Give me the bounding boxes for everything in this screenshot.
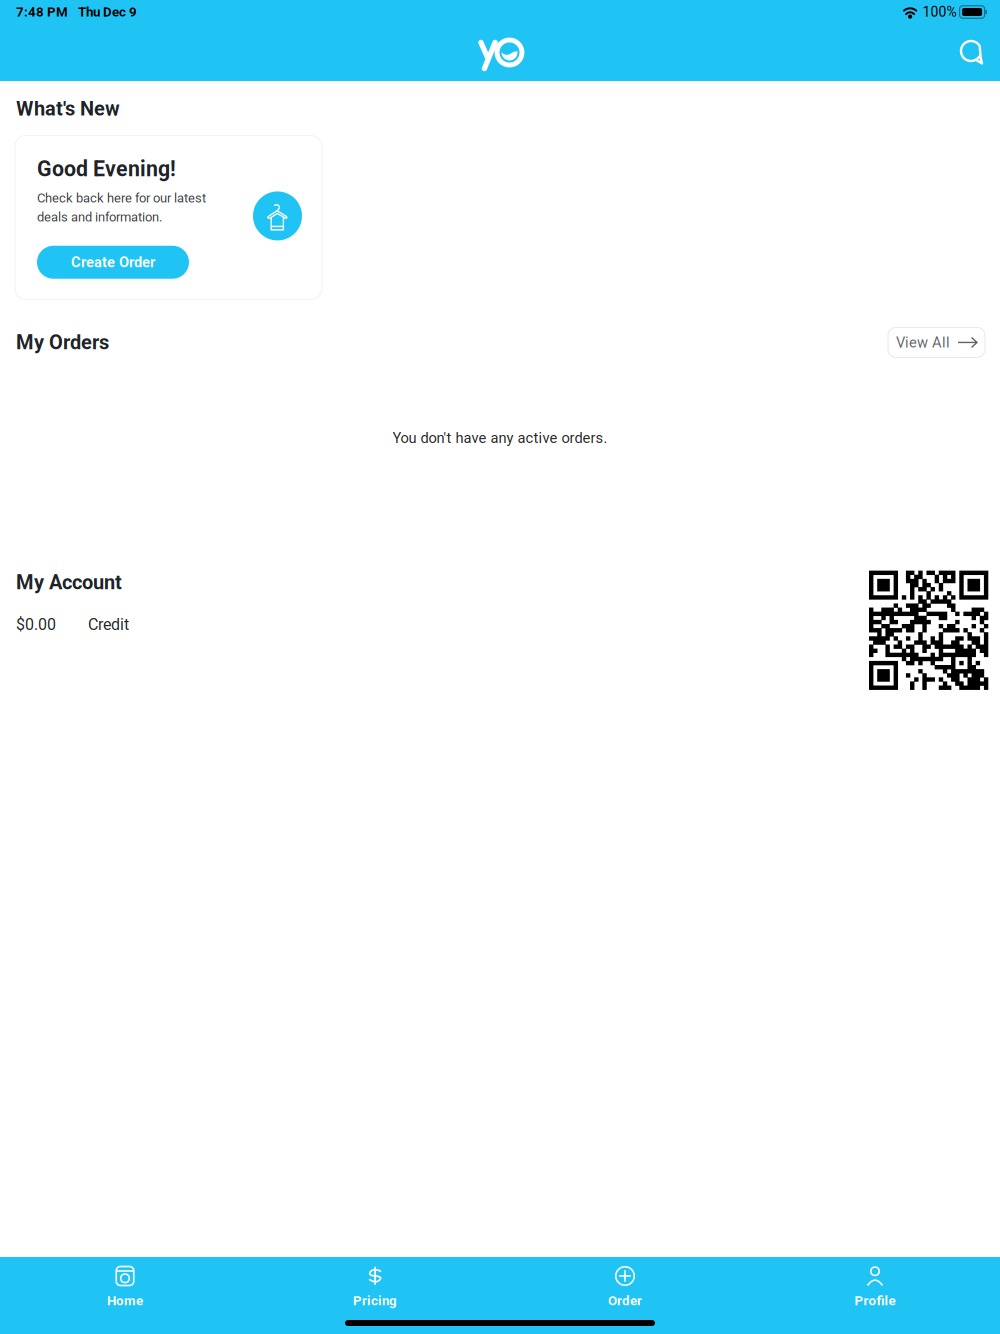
staticText: Check back here for our latest [37, 190, 206, 206]
staticText: Home [107, 1293, 143, 1309]
staticText: What's New [16, 97, 120, 120]
button[interactable]: Pricing [250, 1263, 500, 1312]
staticText: 7:48 PM [16, 4, 68, 20]
staticText: View All [896, 334, 950, 351]
staticText: You don't have any active orders. [392, 429, 607, 447]
staticText: Good Evening! [37, 156, 176, 181]
button[interactable]: Home [0, 1263, 250, 1312]
staticText: Order [608, 1293, 642, 1309]
staticText: deals and information. [37, 210, 162, 225]
button[interactable]: Messages [950, 31, 994, 74]
button[interactable]: View All [888, 327, 985, 357]
staticText: Thu Dec 9 [78, 4, 137, 20]
staticText: $0.00 [16, 615, 56, 634]
staticText: Pricing [353, 1293, 397, 1309]
button[interactable]: Create Order [37, 246, 189, 279]
staticText: 100% [923, 4, 957, 20]
staticText: Create Order [71, 254, 155, 271]
staticText: Credit [88, 615, 129, 634]
staticText: My Orders [16, 331, 109, 354]
staticText: My Account [16, 571, 122, 594]
button[interactable]: Order [500, 1263, 750, 1312]
staticText: Profile [854, 1293, 895, 1309]
button[interactable]: Profile [750, 1263, 1000, 1312]
